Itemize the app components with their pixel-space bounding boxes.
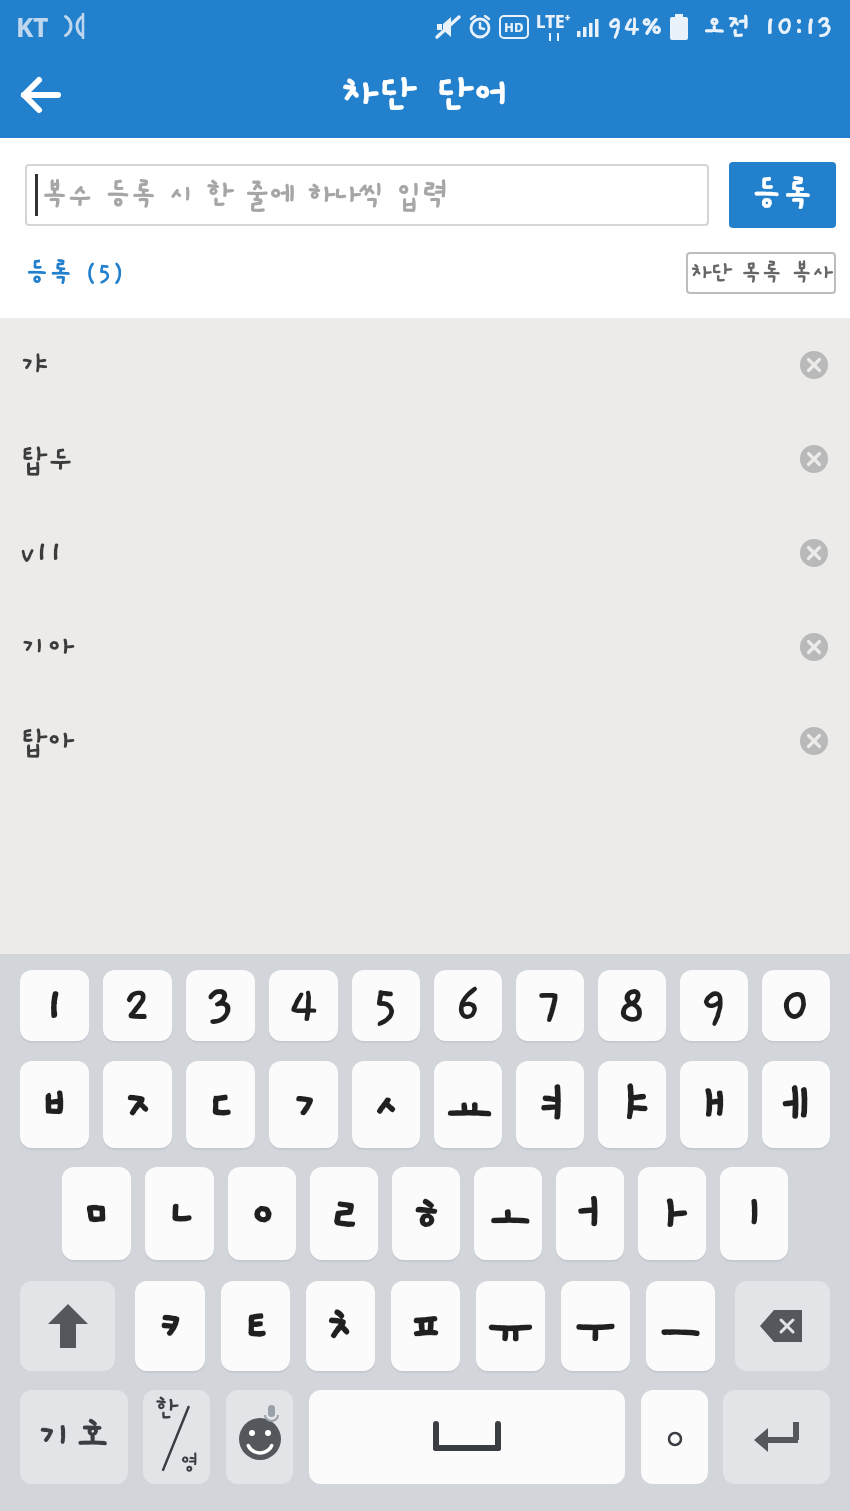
staticText: 차단 목록 복사 — [690, 260, 832, 286]
button[interactable]: 차단 목록 복사 — [686, 252, 836, 294]
button[interactable]: 기아 — [20, 600, 828, 694]
staticText: 7 — [537, 978, 564, 1033]
button[interactable]: ㅕ — [516, 1061, 584, 1148]
button[interactable]: ㅑ — [598, 1061, 666, 1148]
staticText: ㅕ — [525, 1074, 576, 1136]
button[interactable]: ㅍ — [391, 1281, 460, 1371]
button[interactable]: ㅌ — [221, 1281, 290, 1371]
button[interactable]: ㅜ — [561, 1281, 630, 1371]
staticText: 오전 10:13 — [702, 12, 834, 42]
staticText: 8 — [617, 978, 647, 1033]
button[interactable]: ㅗ — [474, 1167, 542, 1260]
staticText: ㅔ — [771, 1074, 822, 1136]
button[interactable]: ㅣ — [720, 1167, 788, 1260]
button[interactable]: ㅓ — [556, 1167, 624, 1260]
button[interactable]: 6 — [434, 970, 502, 1041]
button[interactable]: ㅏ — [638, 1167, 706, 1260]
button[interactable]: 등록 (5) — [25, 259, 125, 288]
button[interactable]: ㄹ — [310, 1167, 378, 1260]
button[interactable] — [22, 78, 60, 112]
staticText: 9 — [700, 978, 729, 1033]
button[interactable]: ㅊ — [306, 1281, 375, 1371]
staticText: ㅌ — [230, 1295, 281, 1357]
staticText: ㅠ — [485, 1295, 536, 1357]
button[interactable]: 등록 — [729, 162, 836, 228]
staticText: ㅛ — [443, 1074, 494, 1136]
staticText: ㅓ — [565, 1183, 616, 1245]
staticText: ㅂ — [29, 1074, 80, 1136]
staticText: ㄷ — [195, 1074, 246, 1136]
staticText: ㅈ — [112, 1074, 163, 1136]
button[interactable]: 한 — [143, 1390, 210, 1484]
button[interactable]: 7 — [516, 970, 584, 1041]
button[interactable]: ㅔ — [762, 1061, 830, 1148]
button[interactable] — [641, 1390, 708, 1484]
staticText: ㅅ — [361, 1074, 412, 1136]
staticText: ㅜ — [570, 1295, 621, 1357]
button[interactable]: ㅛ — [434, 1061, 502, 1148]
staticText: ㅡ — [655, 1295, 706, 1357]
button[interactable] — [20, 1281, 115, 1371]
button[interactable] — [800, 351, 828, 379]
staticText: ㅋ — [145, 1295, 196, 1357]
button[interactable] — [800, 633, 828, 661]
staticText: ㅐ — [689, 1074, 740, 1136]
button[interactable]: 2 — [103, 970, 172, 1041]
button[interactable]: 4 — [269, 970, 338, 1041]
button[interactable]: 5 — [352, 970, 420, 1041]
staticText: ㅗ — [483, 1183, 534, 1245]
button[interactable]: ㅁ — [62, 1167, 131, 1260]
button[interactable]: 갸 — [20, 318, 828, 412]
staticText: ㅎ — [401, 1183, 452, 1245]
staticText: 등록 — [751, 176, 814, 214]
button[interactable]: 9 — [680, 970, 748, 1041]
button[interactable]: 탑아 — [20, 694, 828, 788]
staticText: 6 — [455, 978, 482, 1033]
button[interactable]: 기호 — [20, 1390, 128, 1484]
button[interactable] — [723, 1390, 830, 1484]
button[interactable]: 8 — [598, 970, 666, 1041]
staticText: ㅁ — [71, 1183, 122, 1245]
button[interactable]: 0 — [762, 970, 830, 1041]
button[interactable]: ㅋ — [135, 1281, 205, 1371]
staticText: ㅊ — [315, 1295, 366, 1357]
button[interactable]: ㅠ — [476, 1281, 545, 1371]
staticText: ㅑ — [607, 1074, 658, 1136]
button[interactable]: ㅇ — [228, 1167, 296, 1260]
staticText: 기아 — [20, 631, 75, 664]
button[interactable]: 3 — [186, 970, 255, 1041]
button[interactable]: ㅈ — [103, 1061, 172, 1148]
staticText: HD — [504, 18, 524, 36]
staticText: 0 — [780, 978, 812, 1033]
button[interactable]: ㄴ — [145, 1167, 214, 1260]
button[interactable]: ㅡ — [646, 1281, 715, 1371]
button[interactable]: ㅅ — [352, 1061, 420, 1148]
button[interactable] — [309, 1390, 625, 1484]
staticText: ㄹ — [319, 1183, 370, 1245]
button[interactable] — [226, 1390, 293, 1484]
button[interactable]: ㄷ — [186, 1061, 255, 1148]
staticText: ㅏ — [647, 1183, 698, 1245]
button[interactable] — [800, 445, 828, 473]
button[interactable] — [735, 1281, 830, 1371]
staticText: ㅇ — [237, 1183, 288, 1245]
button[interactable]: 탑두 — [20, 412, 828, 506]
button[interactable]: ㄱ — [269, 1061, 338, 1148]
button[interactable]: ㅐ — [680, 1061, 748, 1148]
button[interactable] — [800, 539, 828, 567]
staticText: 94% — [607, 11, 664, 42]
staticText: 기호 — [36, 1414, 112, 1460]
staticText: 한 — [155, 1396, 178, 1424]
button[interactable]: v11 — [20, 506, 828, 600]
staticText: 복수 등록 시 한 줄에 하나씩 입력 — [41, 179, 448, 212]
button[interactable]: ㅎ — [392, 1167, 460, 1260]
staticText: ㅣ — [729, 1183, 780, 1245]
staticText: 5 — [372, 978, 400, 1033]
button[interactable] — [800, 727, 828, 755]
button[interactable]: 1 — [20, 970, 89, 1041]
button[interactable]: ㅂ — [20, 1061, 89, 1148]
staticText: ㄱ — [278, 1074, 329, 1136]
staticText: 영 — [180, 1452, 200, 1476]
staticText: 3 — [206, 978, 236, 1033]
button[interactable]: 복수 등록 시 한 줄에 하나씩 입력 — [25, 164, 709, 226]
